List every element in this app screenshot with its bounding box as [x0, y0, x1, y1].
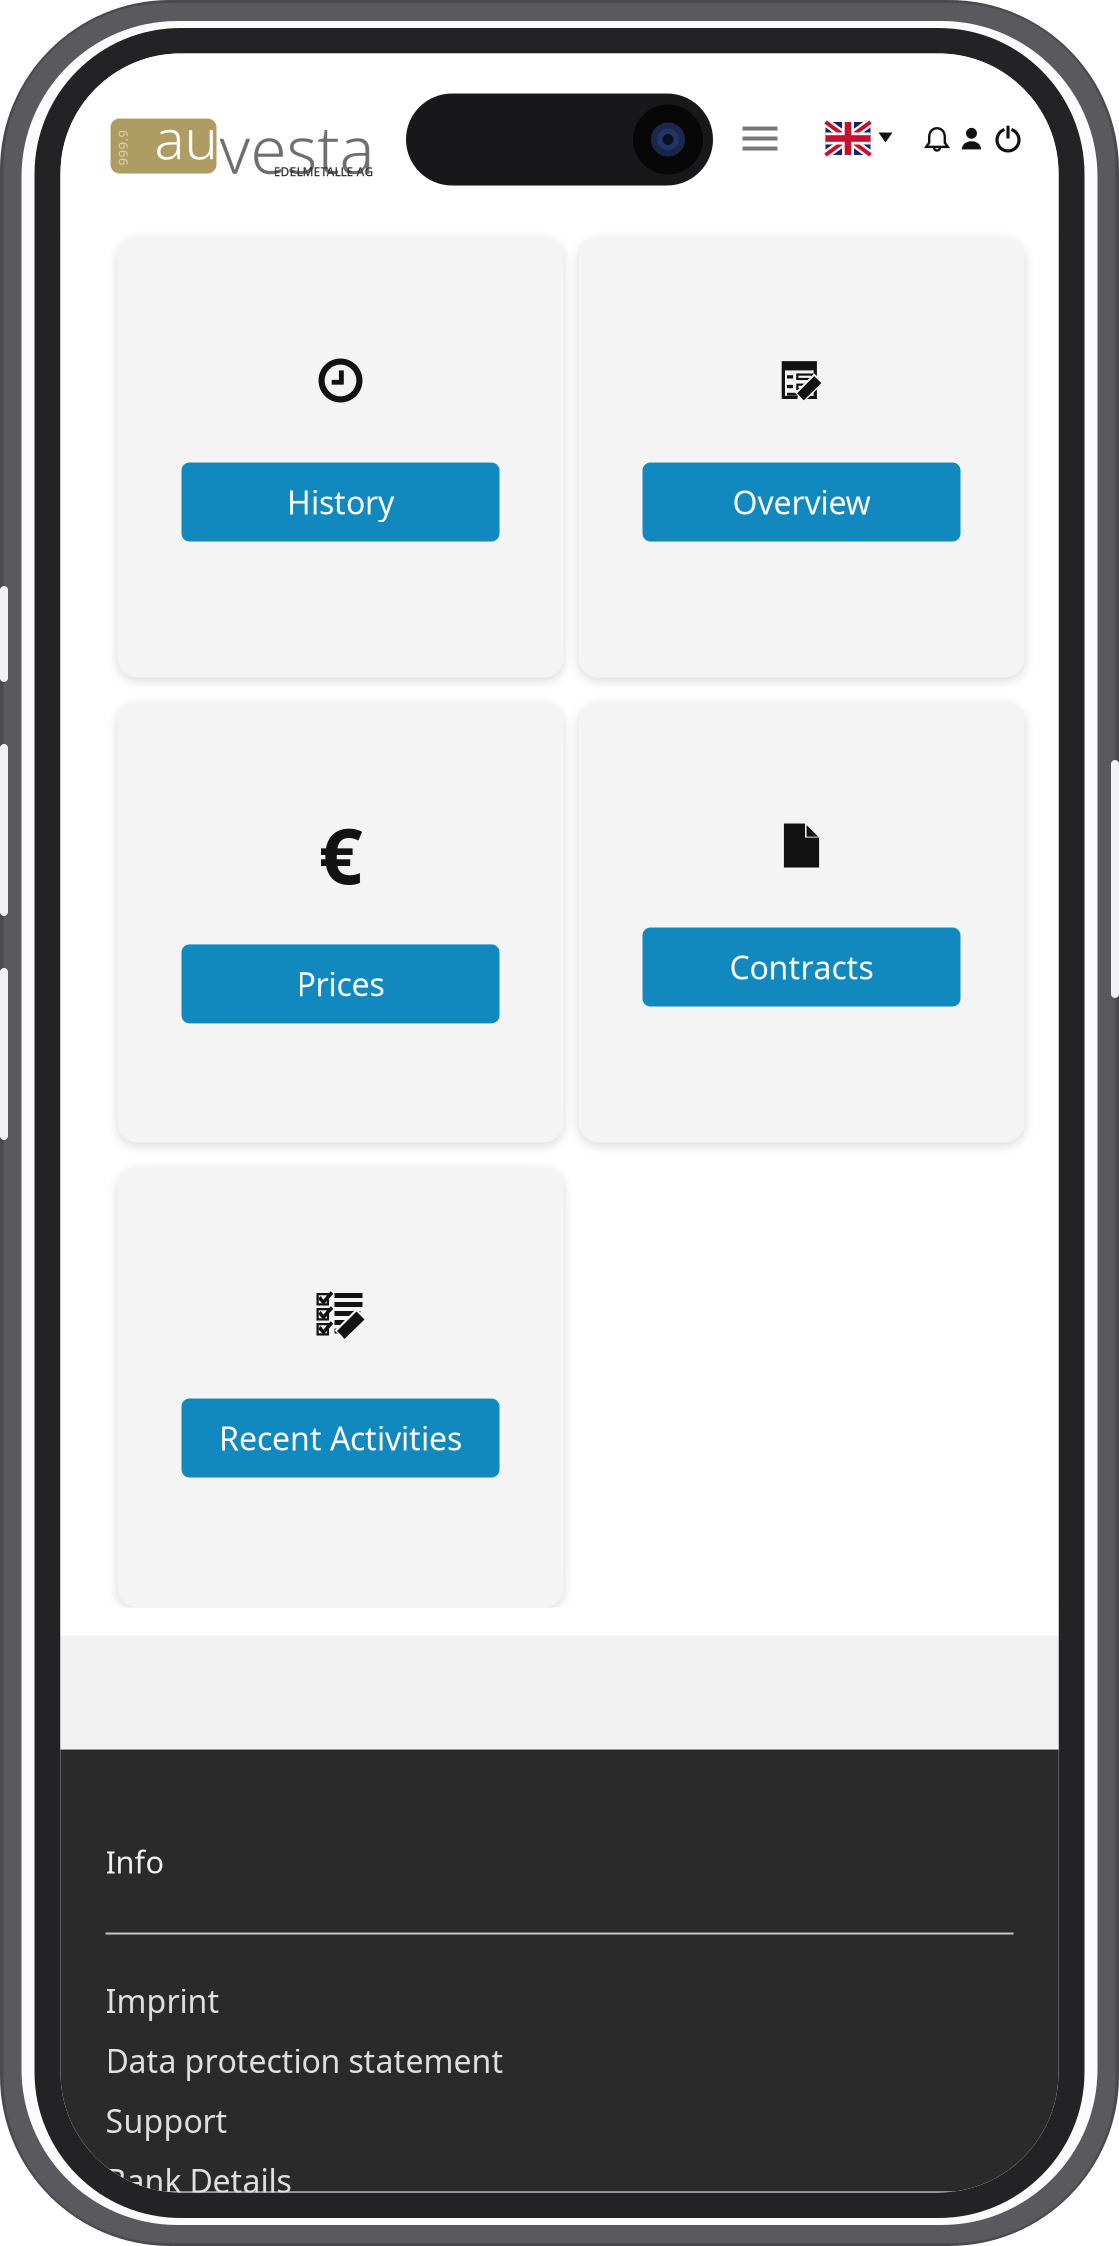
staticText: History	[287, 481, 394, 523]
staticText: Overview	[732, 481, 870, 523]
button[interactable]: Account	[962, 116, 980, 160]
button[interactable]: Log out	[995, 116, 1020, 160]
staticText: Info	[105, 1841, 164, 1882]
button[interactable]: Change language	[825, 116, 891, 160]
staticText: Support	[105, 2099, 227, 2142]
staticText: Bank Details	[105, 2159, 291, 2202]
staticText: 999.9	[104, 139, 140, 156]
staticText: Contracts	[729, 946, 873, 988]
staticText: EDELMETALLE AG	[273, 163, 373, 179]
button[interactable]: auvesta Edelmetalle AG	[103, 98, 383, 180]
staticText: vesta	[219, 105, 374, 192]
staticText: €	[318, 803, 362, 905]
button[interactable]: Recent Activities	[117, 1167, 563, 1607]
button[interactable]: Menu	[742, 116, 777, 160]
button[interactable]: Notifications	[924, 116, 949, 160]
button[interactable]: Overview	[578, 237, 1024, 677]
button[interactable]: Support	[105, 2090, 1013, 2150]
staticText: Prices	[296, 963, 384, 1005]
button[interactable]: History	[117, 237, 563, 677]
staticText: au	[154, 100, 217, 175]
staticText: Data protection statement	[105, 2039, 503, 2082]
button[interactable]: Contracts	[578, 702, 1024, 1142]
staticText: Recent Activities	[219, 1417, 462, 1459]
button[interactable]: Bank Details	[105, 2150, 1013, 2210]
staticText: Imprint	[105, 1979, 219, 2022]
button[interactable]: Imprint	[105, 1970, 1013, 2030]
button[interactable]: €	[117, 702, 563, 1142]
button[interactable]: Data protection statement	[105, 2030, 1013, 2090]
